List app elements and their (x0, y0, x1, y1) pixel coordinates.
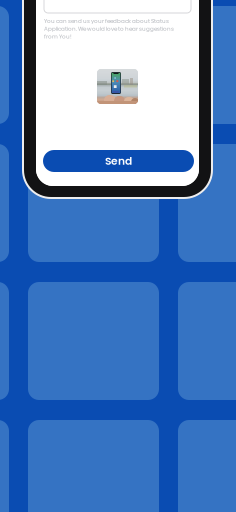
staticText: Send (105, 153, 132, 168)
staticText: You can send us your feedback about Stat… (44, 17, 174, 40)
button[interactable]: Send (43, 150, 194, 172)
